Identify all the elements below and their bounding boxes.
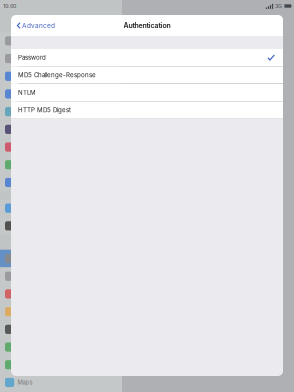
- staticText: Home Screen & Dock: [17, 90, 73, 97]
- staticText: Accessibility: [17, 108, 49, 115]
- staticText: Authentication: [123, 21, 170, 30]
- staticText: Advanced: [22, 21, 55, 29]
- staticText: MD5 Challenge-Response: [18, 71, 96, 79]
- button[interactable]: NTLM: [11, 84, 283, 101]
- staticText: Control Center: [17, 55, 54, 62]
- staticText: 3G: [275, 3, 282, 9]
- button[interactable]: Advanced: [11, 15, 59, 36]
- button[interactable]: Password: [11, 49, 283, 66]
- staticText: NTLM: [18, 89, 36, 96]
- staticText: 10:00: [3, 3, 16, 9]
- staticText: Password: [18, 54, 46, 61]
- button[interactable]: MD5 Challenge-Response: [11, 66, 283, 83]
- staticText: HTTP MD5 Digest: [18, 106, 71, 114]
- button[interactable]: HTTP MD5 Digest: [11, 101, 283, 118]
- staticText: Display & Brightness: [17, 73, 72, 80]
- staticText: Maps: [17, 379, 32, 386]
